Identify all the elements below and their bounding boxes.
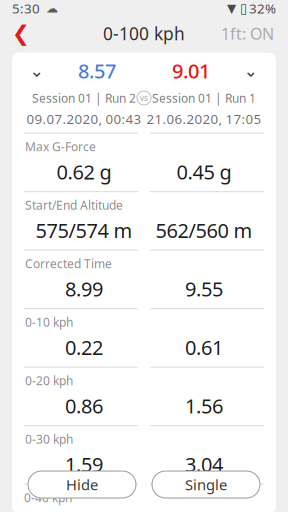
staticText: 1.59 [65, 451, 103, 478]
staticText: 9.01 [172, 57, 210, 84]
staticText: 0-10 kph [25, 314, 73, 330]
staticText: ⌄ [29, 61, 44, 81]
staticText: 0-100 kph [103, 22, 185, 45]
button[interactable]: Back [4, 18, 38, 48]
button[interactable]: 1ft: ON [211, 18, 284, 48]
staticText: 0-30 kph [25, 431, 73, 447]
staticText: 0.62 g [56, 159, 111, 185]
staticText: 09.07.2020, 00:43 [26, 110, 141, 128]
staticText: 9.55 [185, 276, 223, 302]
staticText: 8.99 [65, 276, 103, 302]
staticText: 1ft: ON [221, 23, 274, 44]
button[interactable]: Expand left run [24, 62, 50, 80]
staticText: Session 01 | Run 1 [152, 90, 256, 106]
staticText: vs [140, 93, 148, 103]
staticText: ☁ [46, 2, 58, 15]
staticText: 32% [249, 0, 276, 17]
staticText: 575/574 m [35, 217, 132, 244]
staticText: Max G-Force [25, 139, 96, 154]
staticText: Hide [66, 475, 98, 494]
staticText: 0.45 g [176, 159, 231, 185]
staticText: 562/560 m [155, 217, 252, 244]
staticText: ▯ [240, 1, 247, 16]
staticText: 0.22 [65, 334, 103, 361]
staticText: 0.61 [185, 334, 223, 361]
staticText: Corrected Time [25, 256, 112, 271]
button[interactable]: Hide [28, 471, 136, 498]
staticText: 0-40 kph [24, 490, 72, 505]
button[interactable]: Single [152, 471, 260, 498]
staticText: Start/End Altitude [25, 197, 123, 213]
staticText: 3.04 [185, 451, 223, 478]
staticText: ▼ [227, 2, 236, 15]
staticText: 5:30 [12, 0, 40, 17]
staticText: Single [185, 475, 227, 494]
staticText: 0-20 kph [25, 373, 73, 388]
staticText: 21.06.2020, 17:05 [146, 110, 261, 128]
staticText: Session 01 | Run 2 [32, 90, 136, 106]
staticText: ⌄ [243, 61, 258, 81]
staticText: 1.56 [185, 393, 223, 419]
staticText: 0.86 [65, 393, 103, 419]
button[interactable]: Expand right run [238, 62, 264, 80]
staticText: ❮ [12, 21, 30, 45]
staticText: 8.57 [78, 57, 116, 84]
